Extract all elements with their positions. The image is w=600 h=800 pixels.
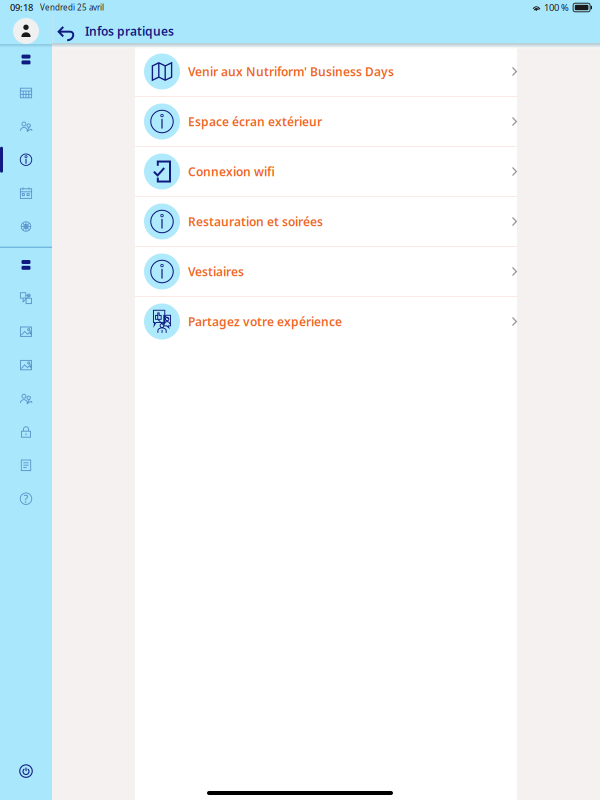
- staticText: Restauration et soirées: [188, 213, 323, 229]
- button[interactable]: Venir aux Nutriform' Business Days: [135, 47, 517, 96]
- button[interactable]: Ateliers: [0, 282, 52, 315]
- staticText: 09:18: [10, 1, 33, 14]
- staticText: Infos pratiques: [85, 23, 174, 39]
- button[interactable]: Galerie: [0, 348, 52, 382]
- button[interactable]: Photos: [0, 315, 52, 348]
- button[interactable]: Documents: [0, 449, 52, 482]
- staticText: Vestiaires: [188, 263, 244, 279]
- button[interactable]: Agenda: [0, 176, 52, 210]
- button[interactable]: Aide: [0, 482, 52, 515]
- staticText: 100 %: [544, 1, 569, 14]
- button[interactable]: Sessions: [0, 248, 52, 282]
- button[interactable]: Vestiaires: [135, 247, 517, 296]
- button[interactable]: Espace écran extérieur: [135, 97, 517, 146]
- button[interactable]: Réglages: [0, 210, 52, 243]
- button[interactable]: Mon compte: [0, 15, 52, 47]
- staticText: Partagez votre expérience: [188, 313, 342, 329]
- staticText: Venir aux Nutriform' Business Days: [188, 63, 394, 79]
- button[interactable]: Restauration et soirées: [135, 197, 517, 246]
- staticText: Espace écran extérieur: [188, 113, 322, 129]
- staticText: ?: [23, 492, 28, 506]
- button[interactable]: Accueil: [0, 43, 52, 76]
- button[interactable]: Retour: [53, 15, 81, 47]
- button[interactable]: Intervenants: [0, 382, 52, 415]
- staticText: Vendredi 25 avril: [40, 2, 104, 13]
- button[interactable]: Espace privé: [0, 415, 52, 449]
- button[interactable]: Connexion wifi: [135, 147, 517, 196]
- button[interactable]: Participants: [0, 110, 52, 143]
- button[interactable]: Programme: [0, 76, 52, 110]
- button[interactable]: Partagez votre expérience: [135, 297, 517, 346]
- button[interactable]: Déconnexion: [0, 754, 52, 788]
- staticText: Connexion wifi: [188, 163, 275, 179]
- button[interactable]: Infos pratiques: [0, 143, 52, 176]
